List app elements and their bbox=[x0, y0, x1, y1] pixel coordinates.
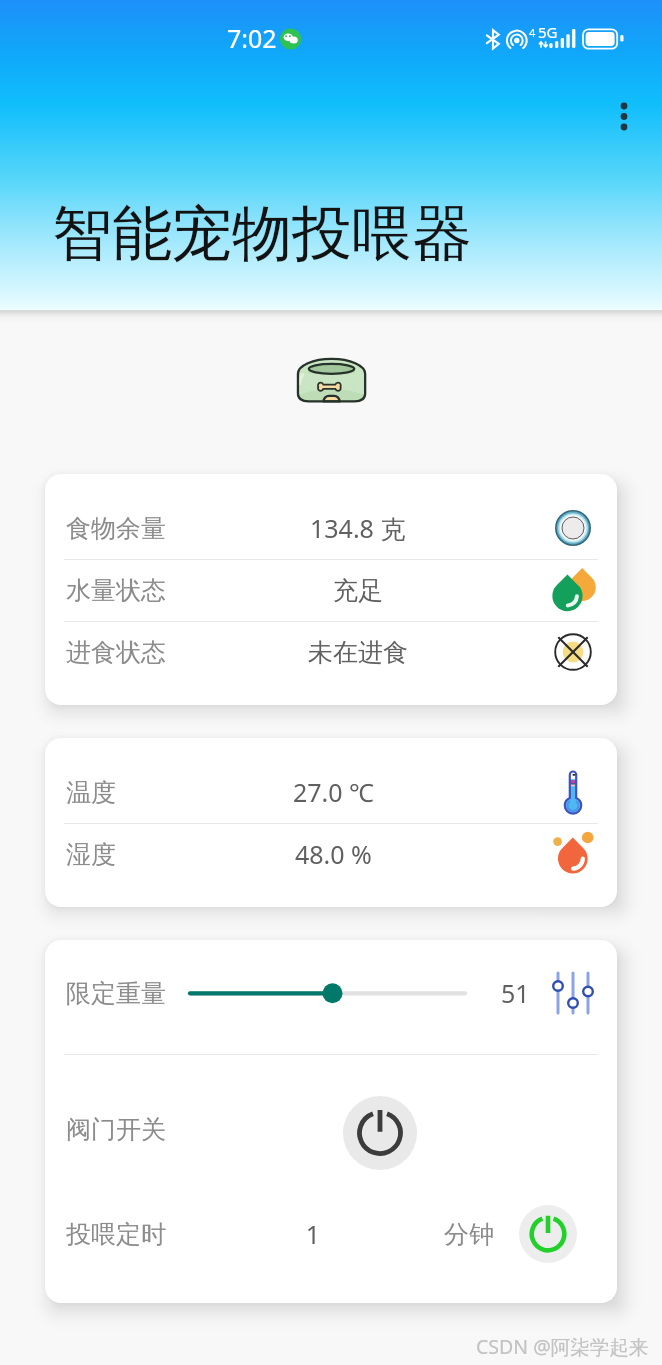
button[interactable]: 食物余量 bbox=[45, 497, 617, 559]
staticText: 进食状态 bbox=[66, 637, 166, 668]
button[interactable]: 水量状态 bbox=[45, 559, 617, 621]
staticText: 限定重量 bbox=[66, 978, 166, 1009]
staticText: CSDN @阿柒学起来 bbox=[476, 1333, 649, 1360]
button[interactable]: 进食状态 bbox=[45, 621, 617, 683]
staticText: 7:02 bbox=[227, 21, 277, 55]
staticText: 分钟 bbox=[444, 1219, 494, 1250]
button[interactable]: 湿度 bbox=[45, 823, 617, 885]
staticText: 134.8 克 bbox=[310, 511, 406, 545]
staticText: 湿度 bbox=[66, 839, 116, 870]
staticText: 1 bbox=[283, 1217, 343, 1251]
staticText: 27.0 ℃ bbox=[293, 775, 374, 809]
staticText: 4 bbox=[529, 25, 536, 40]
staticText: 48.0 % bbox=[295, 837, 372, 871]
staticText: 水量状态 bbox=[66, 575, 166, 606]
staticText: 未在进食 bbox=[308, 637, 408, 668]
button[interactable]: Feeding timer switch bbox=[519, 1205, 577, 1263]
staticText: 51 bbox=[501, 976, 530, 1010]
button[interactable]: More options bbox=[600, 92, 648, 140]
staticText: 充足 bbox=[333, 575, 383, 606]
button[interactable]: Valve power switch bbox=[343, 1096, 417, 1170]
staticText: 食物余量 bbox=[66, 513, 166, 544]
staticText: 阀门开关 bbox=[66, 1114, 166, 1145]
staticText: 投喂定时 bbox=[66, 1219, 166, 1250]
button[interactable]: 温度 bbox=[45, 761, 617, 823]
staticText: 5G bbox=[538, 22, 558, 42]
staticText: 温度 bbox=[66, 777, 116, 808]
button[interactable]: 限定重量 bbox=[45, 962, 617, 1024]
staticText: 智能宠物投喂器 bbox=[52, 196, 472, 272]
